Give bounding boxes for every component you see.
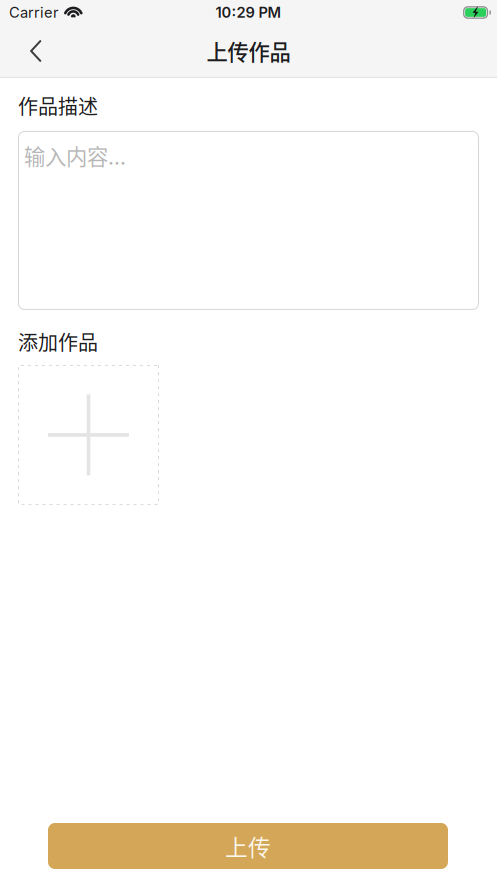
- button[interactable]: 作品描述输入框: [18, 131, 479, 310]
- button[interactable]: 添加作品: [18, 365, 159, 505]
- staticText: 输入内容...: [24, 140, 126, 171]
- staticText: 上传: [225, 830, 271, 862]
- staticText: 添加作品: [18, 327, 98, 356]
- button[interactable]: 返回: [0, 26, 61, 76]
- staticText: 10:29 PM: [215, 4, 281, 21]
- staticText: 作品描述: [18, 91, 98, 120]
- staticText: 上传作品: [206, 36, 290, 66]
- staticText: Carrier: [9, 4, 59, 21]
- button[interactable]: 上传: [48, 823, 448, 869]
